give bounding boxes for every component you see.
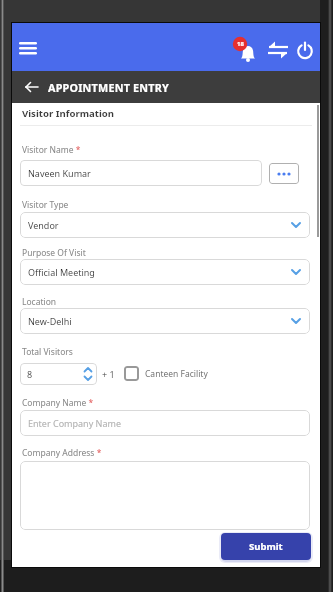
staticText: New-Delhi — [28, 315, 72, 327]
button[interactable] — [16, 38, 46, 64]
staticText: 18 — [237, 40, 244, 48]
staticText: Official Meeting — [28, 266, 95, 278]
staticText: Purpose Of Visit — [22, 247, 86, 259]
button[interactable]: New-Delhi — [20, 308, 310, 334]
staticText: 8 — [27, 368, 33, 380]
staticText: Visitor Type — [22, 199, 69, 211]
button[interactable] — [295, 37, 317, 65]
staticText: Vendor — [28, 219, 59, 231]
staticText: Submit — [249, 540, 283, 553]
button[interactable]: Enter Company Name — [20, 410, 310, 436]
staticText: Enter Company Name — [28, 417, 121, 429]
staticText: Canteen Facility — [145, 368, 208, 380]
button[interactable]: Official Meeting — [20, 259, 310, 285]
staticText: Visitor Name * — [22, 144, 81, 156]
button[interactable]: 18 — [230, 35, 262, 67]
staticText: APPOINTMENT ENTRY — [48, 80, 169, 95]
staticText: Total Visitors — [22, 346, 73, 358]
button[interactable] — [124, 366, 139, 381]
button[interactable] — [20, 73, 48, 101]
button[interactable]: 8 — [20, 363, 97, 385]
button[interactable] — [20, 461, 310, 530]
button[interactable]: Naveen Kumar — [20, 160, 262, 186]
staticText: Company Address * — [22, 447, 102, 459]
staticText: Visitor Information — [22, 107, 115, 120]
button[interactable] — [269, 163, 299, 184]
staticText: Location — [22, 296, 57, 308]
staticText: Company Name * — [22, 397, 94, 409]
button[interactable]: Submit — [221, 533, 311, 560]
button[interactable]: Vendor — [20, 212, 310, 238]
staticText: Naveen Kumar — [28, 167, 91, 179]
staticText: + 1 — [102, 368, 115, 380]
button[interactable] — [263, 36, 293, 66]
